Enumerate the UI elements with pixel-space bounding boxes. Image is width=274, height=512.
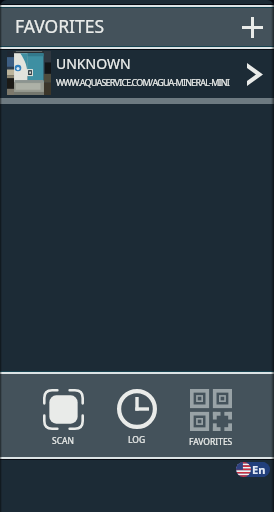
staticText: LOG [128,434,146,446]
staticText: FAVORITES [189,436,233,448]
button[interactable]: SCAN [26,374,100,457]
staticText: SCAN [52,435,74,447]
button[interactable]: Language English [236,462,270,477]
staticText: FAVORITES [15,14,105,38]
button[interactable]: LOG [100,374,174,457]
staticText: En [252,462,266,477]
button[interactable]: UNKNOWN [0,50,274,98]
button[interactable]: FAVORITES [174,374,248,457]
button[interactable]: Add favorite [230,8,274,46]
staticText: UNKNOWN [56,54,131,73]
staticText: WWW.AQUASERVICE.COM/AGUA-MINERAL-MINI [56,76,230,88]
